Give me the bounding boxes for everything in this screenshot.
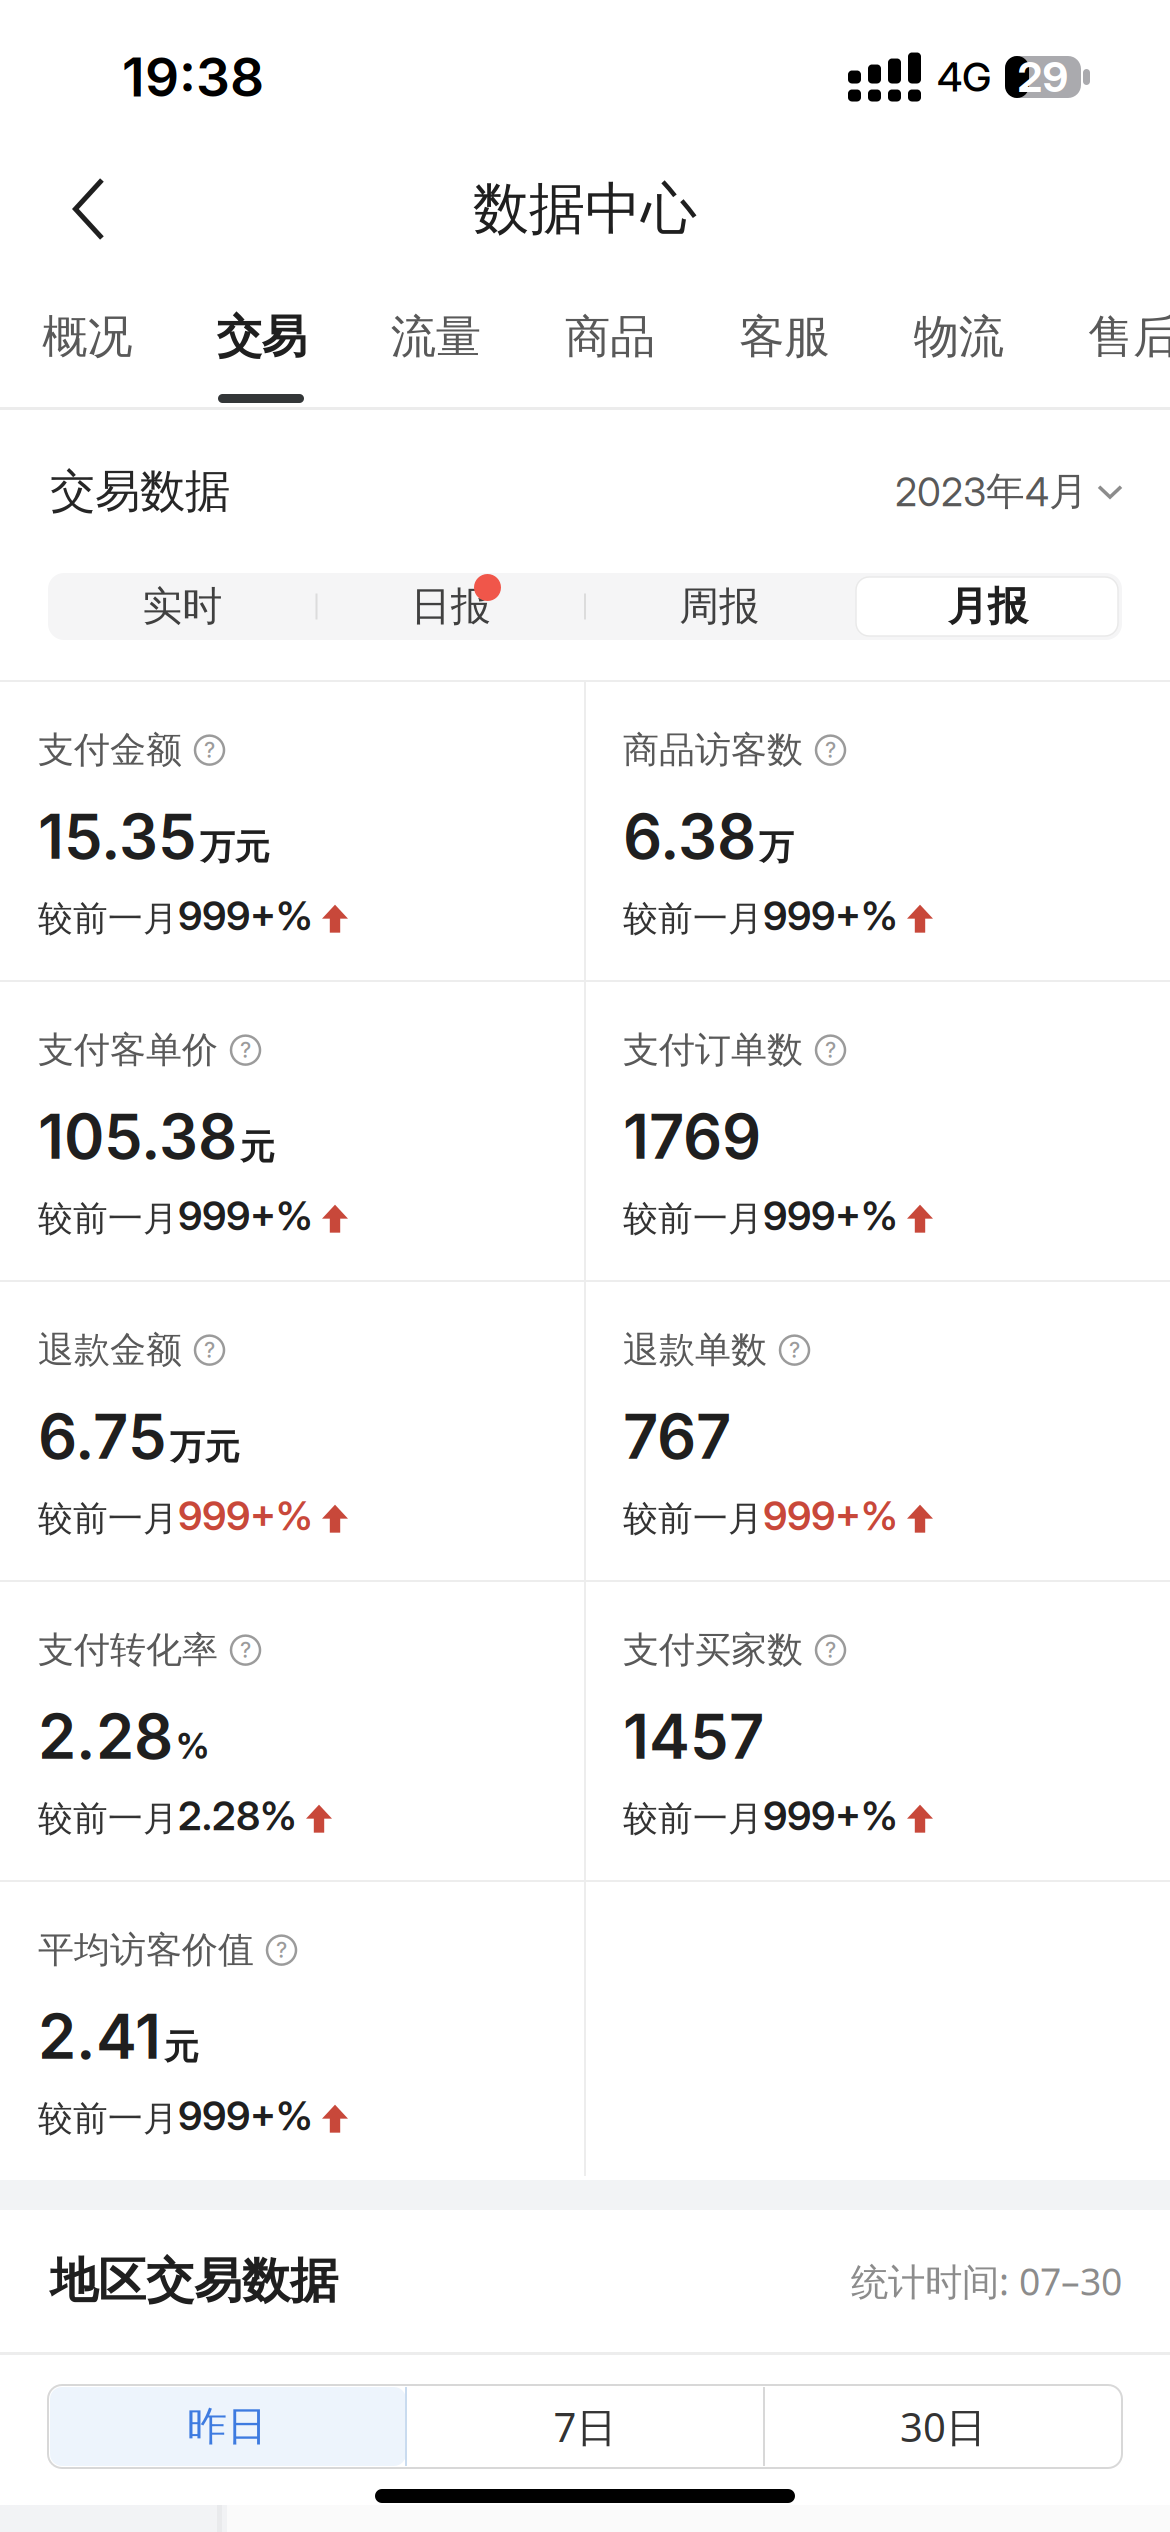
staticText: 7日	[553, 2400, 616, 2453]
staticText: 1769	[623, 1099, 761, 1173]
staticText: 售后	[1088, 309, 1170, 365]
button[interactable]: 指标说明	[230, 1035, 261, 1066]
button[interactable]: 指标说明	[230, 1635, 261, 1666]
staticText: 概况	[42, 309, 132, 365]
staticText: 999+%	[178, 1191, 313, 1240]
staticText: 月报	[948, 582, 1028, 631]
button[interactable]: 指标说明	[815, 1635, 846, 1666]
button[interactable]: 周报	[585, 573, 853, 640]
button[interactable]: 2023年4月	[895, 467, 1122, 516]
button[interactable]: 流量	[349, 300, 523, 374]
staticText: 999+%	[763, 1491, 898, 1540]
staticText: 2.28%	[178, 1791, 297, 1840]
staticText: 数据中心	[473, 175, 697, 243]
staticText: 万	[759, 826, 794, 868]
button[interactable]: 指标说明	[194, 735, 225, 766]
staticText: %	[176, 1725, 209, 1767]
staticText: 地区交易数据	[50, 2251, 338, 2310]
button[interactable]: 指标说明	[815, 735, 846, 766]
staticText: 万元	[170, 1426, 240, 1468]
button[interactable]: 售后	[1046, 300, 1170, 374]
button[interactable]: 概况	[0, 300, 174, 374]
staticText: 1457	[623, 1699, 764, 1773]
staticText: 退款金额	[38, 1328, 182, 1372]
staticText: 支付金额	[38, 728, 182, 772]
staticText: 统计时间: 07–30	[851, 2256, 1122, 2306]
staticText: 999+%	[763, 1191, 898, 1240]
staticText: 支付订单数	[623, 1028, 803, 1072]
button[interactable]: 交易	[174, 300, 349, 374]
staticText: 商品	[565, 309, 655, 365]
staticText: 6.75	[38, 1399, 167, 1473]
staticText: 平均访客价值	[38, 1928, 254, 1972]
button[interactable]: 月报	[853, 573, 1122, 640]
staticText: 交易	[216, 309, 306, 365]
staticText: 商品访客数	[623, 728, 803, 772]
staticText: 昨日	[187, 2402, 267, 2451]
staticText: 999+%	[763, 1791, 898, 1840]
staticText: 较前一月	[38, 1197, 178, 1240]
staticText: 2.28	[38, 1699, 173, 1773]
staticText: ?	[204, 737, 215, 763]
staticText: 105.38	[38, 1099, 237, 1173]
staticText: 较前一月	[38, 1797, 178, 1840]
button[interactable]: 30日	[764, 2385, 1122, 2468]
staticText: 较前一月	[38, 897, 178, 940]
staticText: 流量	[391, 309, 481, 365]
staticText: 周报	[679, 582, 759, 631]
staticText: ?	[825, 737, 836, 763]
staticText: 元	[164, 2026, 199, 2068]
staticText: 客服	[739, 309, 829, 365]
staticText: 29	[1017, 52, 1068, 102]
staticText: 万元	[200, 826, 270, 868]
staticText: ?	[240, 1637, 251, 1663]
staticText: 退款单数	[623, 1328, 767, 1372]
staticText: 2023年4月	[895, 467, 1088, 516]
staticText: 较前一月	[623, 897, 763, 940]
staticText: ?	[825, 1637, 836, 1663]
staticText: 日报	[411, 582, 491, 631]
button[interactable]: 指标说明	[779, 1335, 810, 1366]
staticText: ?	[240, 1037, 251, 1063]
staticText: 999+%	[763, 891, 898, 940]
staticText: 较前一月	[623, 1197, 763, 1240]
staticText: 物流	[914, 309, 1004, 365]
button[interactable]: 指标说明	[266, 1935, 297, 1966]
button[interactable]: 商品	[523, 300, 697, 374]
button[interactable]: 客服	[697, 300, 871, 374]
button[interactable]: 昨日	[48, 2385, 406, 2468]
staticText: 6.38	[623, 799, 756, 873]
staticText: 较前一月	[38, 1497, 178, 1540]
button[interactable]: 指标说明	[194, 1335, 225, 1366]
staticText: 999+%	[178, 1491, 313, 1540]
staticText: 4G	[937, 53, 991, 101]
button[interactable]: 返回	[0, 176, 106, 242]
staticText: 交易数据	[50, 464, 230, 519]
staticText: 15.35	[38, 799, 197, 873]
staticText: 支付买家数	[623, 1628, 803, 1672]
staticText: 支付转化率	[38, 1628, 218, 1672]
staticText: 较前一月	[623, 1797, 763, 1840]
staticText: 元	[240, 1126, 275, 1168]
staticText: ?	[789, 1337, 800, 1363]
button[interactable]: 日报	[316, 573, 585, 640]
staticText: 较前一月	[623, 1497, 763, 1540]
staticText: 767	[623, 1399, 731, 1473]
button[interactable]: 实时	[48, 573, 316, 640]
staticText: 999+%	[178, 2091, 313, 2140]
staticText: 支付客单价	[38, 1028, 218, 1072]
staticText: 999+%	[178, 891, 313, 940]
staticText: 2.41	[38, 1999, 161, 2073]
button[interactable]: 物流	[871, 300, 1046, 374]
staticText: ?	[204, 1337, 215, 1363]
button[interactable]: 7日	[406, 2385, 764, 2468]
staticText: 较前一月	[38, 2097, 178, 2140]
staticText: 30日	[900, 2400, 986, 2453]
staticText: ?	[825, 1037, 836, 1063]
staticText: ?	[276, 1937, 287, 1963]
staticText: 19:38	[122, 45, 264, 109]
staticText: 实时	[142, 582, 222, 631]
button[interactable]: 指标说明	[815, 1035, 846, 1066]
